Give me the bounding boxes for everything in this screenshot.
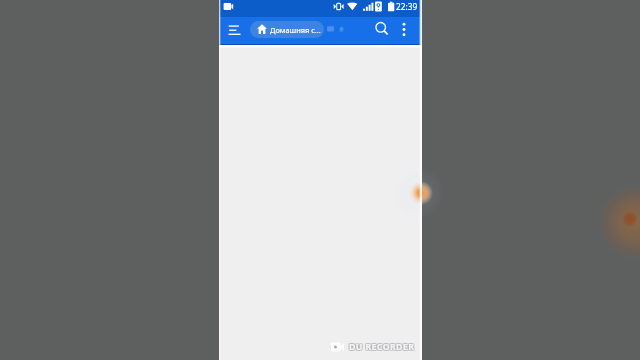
staticText: DU RECORDER [349,341,415,353]
staticText: DU RECORDER [350,342,416,354]
staticText: 22:39 [396,1,418,12]
staticText: DU RECORDER [349,342,415,354]
staticText: DU RECORDER [349,340,415,352]
button[interactable]: More options [395,16,412,43]
staticText: DU RECORDER [350,340,416,352]
staticText: DU RECORDER [350,341,416,353]
staticText: DU RECORDER [348,341,414,353]
staticText: Домашняя с... [270,25,321,35]
staticText: DU RECORDER [348,340,414,352]
button[interactable]: Search [369,16,395,43]
button[interactable]: Open navigation menu [223,16,247,43]
button[interactable]: Домашняя с... [250,21,324,38]
staticText: DU RECORDER [348,342,414,354]
